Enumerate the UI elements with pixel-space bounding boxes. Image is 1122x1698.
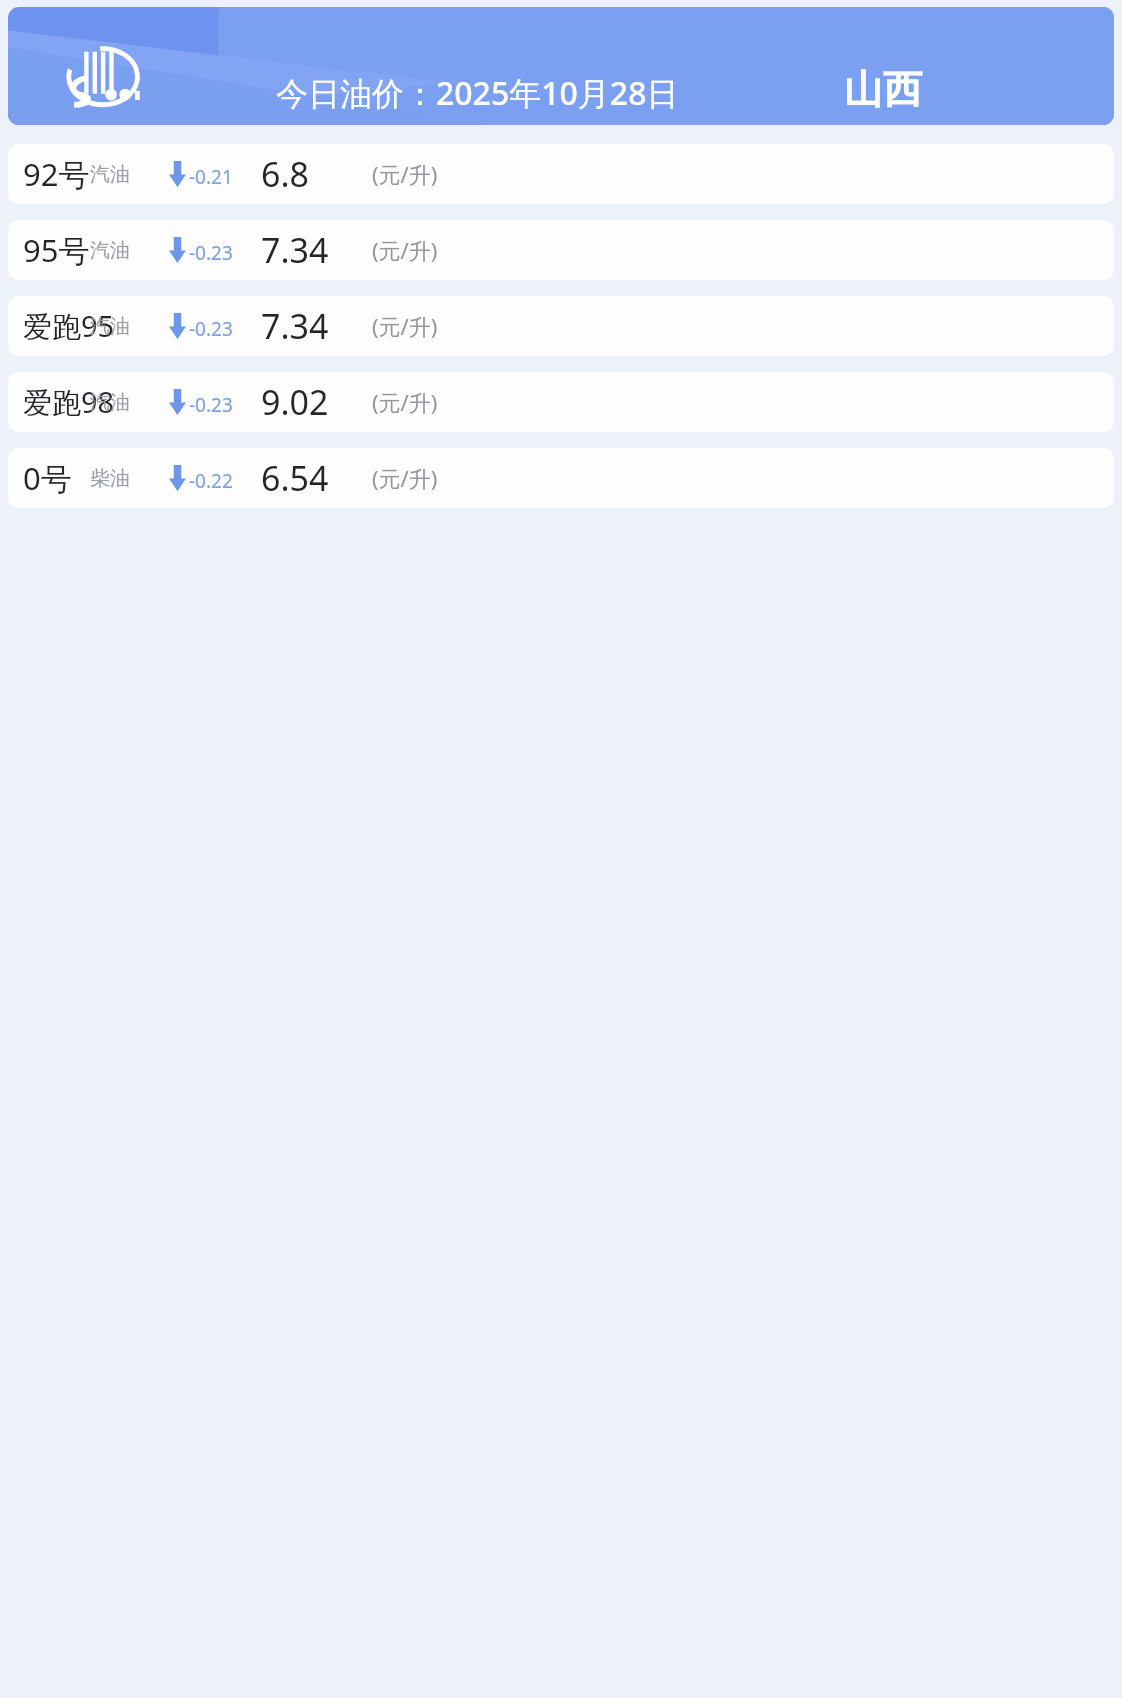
staticText: -0.23	[189, 316, 233, 342]
staticText: 0号	[23, 457, 72, 499]
staticText: 柴油	[90, 466, 130, 491]
staticText: 7.34	[261, 303, 329, 349]
button[interactable]: 95号	[8, 220, 1114, 280]
staticText: -0.23	[189, 240, 233, 266]
staticText: 6.54	[261, 455, 329, 501]
other: 中国石化	[60, 47, 148, 125]
staticText: 6.8	[261, 151, 310, 197]
staticText: (元/升)	[372, 311, 438, 341]
staticText: -0.23	[189, 392, 233, 418]
staticText: 汽油	[90, 390, 130, 415]
button[interactable]: 92号	[8, 144, 1114, 204]
staticText: (元/升)	[372, 235, 438, 265]
staticText: -0.21	[189, 164, 233, 190]
button[interactable]: 爱跑98	[8, 372, 1114, 432]
button[interactable]: 爱跑95	[8, 296, 1114, 356]
staticText: -0.22	[189, 468, 233, 494]
staticText: 爱跑98	[23, 382, 115, 422]
staticText: 汽油	[90, 238, 130, 263]
staticText: 9.02	[261, 379, 329, 425]
staticText: 92号	[23, 153, 90, 195]
staticText: (元/升)	[372, 387, 438, 417]
button[interactable]: 0号	[8, 448, 1114, 508]
staticText: 7.34	[261, 227, 329, 273]
staticText: (元/升)	[372, 159, 438, 189]
staticText: 95号	[23, 229, 90, 271]
staticText: 汽油	[90, 314, 130, 339]
staticText: 爱跑95	[23, 306, 115, 346]
staticText: (元/升)	[372, 463, 438, 493]
staticText: 今日油价：2025年10月28日	[276, 71, 679, 115]
staticText: 山西	[844, 65, 922, 114]
staticText: 汽油	[90, 162, 130, 187]
